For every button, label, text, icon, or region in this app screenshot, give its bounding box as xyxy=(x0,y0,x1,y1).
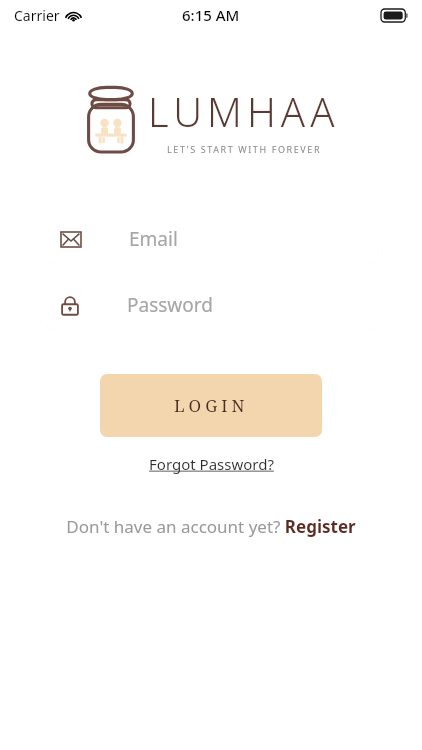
button[interactable]: Don't have an account yet? Register xyxy=(58,511,364,542)
button[interactable]: Email xyxy=(42,215,380,263)
staticText: Email xyxy=(129,226,178,252)
staticText: Password xyxy=(127,292,213,318)
staticText: Don't have an account yet? Register xyxy=(66,515,356,538)
staticText: Carrier xyxy=(14,6,60,25)
other: Password xyxy=(61,295,79,316)
button[interactable]: LOGIN xyxy=(100,374,322,437)
staticText: Forgot Password? xyxy=(149,454,274,474)
button[interactable]: Forgot Password? xyxy=(141,450,282,478)
other: Email xyxy=(61,232,81,247)
staticText: LET'S START WITH FOREVER xyxy=(167,143,322,155)
staticText: 6:15 AM xyxy=(182,5,240,25)
staticText: LOGIN xyxy=(174,394,249,417)
button[interactable]: Password xyxy=(42,281,380,329)
staticText: LUMHAA xyxy=(148,84,340,138)
